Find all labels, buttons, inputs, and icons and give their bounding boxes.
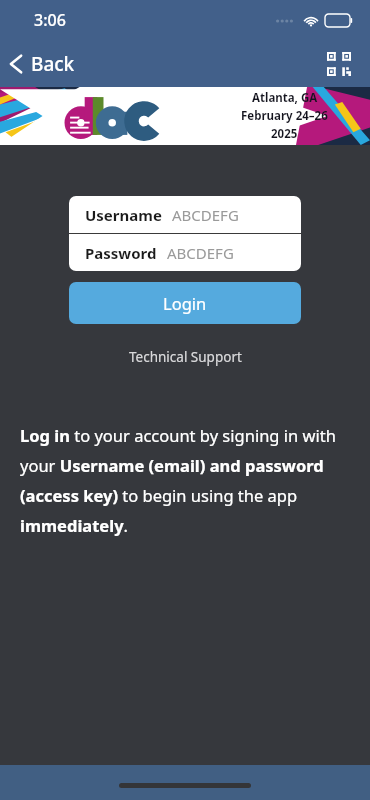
staticText: 3:06 [34,9,66,31]
staticText: Atlanta, GA [252,90,318,106]
button[interactable]: Scan QR code [324,49,354,79]
button[interactable]: Technical Support [119,344,252,370]
staticText: Password [85,243,157,263]
staticText: February 24–26 [241,108,328,124]
button[interactable]: Password [69,234,301,271]
staticText: Username [85,205,162,225]
button[interactable]: Back [0,45,89,83]
staticText: Log in to your account by signing in wit… [20,424,350,536]
button[interactable]: Login [69,282,301,324]
staticText: 2025 [271,126,298,142]
staticText: ABCDEFG [172,205,239,225]
button[interactable]: Username [69,196,301,233]
staticText: Technical Support [129,348,242,366]
staticText: Back [31,51,75,77]
staticText: Login [163,292,207,314]
staticText: ABCDEFG [167,243,234,263]
